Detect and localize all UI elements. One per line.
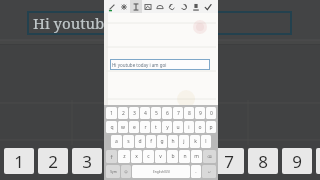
button[interactable]: 2 bbox=[38, 148, 68, 174]
button[interactable]: h bbox=[168, 135, 178, 148]
staticText: c bbox=[147, 153, 150, 160]
staticText: 1 bbox=[110, 110, 113, 117]
button[interactable]: 3 bbox=[129, 107, 139, 119]
button[interactable]: 8 bbox=[184, 107, 194, 119]
staticText: o bbox=[198, 124, 202, 131]
button[interactable]: 5 bbox=[151, 107, 161, 119]
button[interactable]: t bbox=[151, 121, 161, 133]
staticText: q bbox=[110, 124, 114, 131]
staticText: e bbox=[133, 124, 136, 131]
button[interactable]: Hi youtube t bbox=[27, 11, 292, 35]
button[interactable]: r bbox=[140, 121, 150, 133]
button[interactable]: s bbox=[123, 135, 134, 148]
staticText: Sym bbox=[110, 170, 117, 174]
staticText: 7 bbox=[177, 110, 180, 117]
staticText: 3 bbox=[82, 150, 92, 173]
button[interactable]: Shape bbox=[154, 0, 166, 13]
button[interactable]: ↑ bbox=[106, 150, 117, 163]
button[interactable]: English(US) bbox=[132, 165, 190, 178]
button[interactable]: a bbox=[111, 135, 122, 148]
button[interactable]: w bbox=[118, 121, 128, 133]
button[interactable]: o bbox=[195, 121, 205, 133]
button[interactable]: x bbox=[131, 150, 142, 163]
button[interactable]: y bbox=[162, 121, 172, 133]
button[interactable]: v bbox=[155, 150, 166, 163]
button[interactable]: 9 bbox=[195, 107, 205, 119]
button[interactable]: 1 bbox=[4, 148, 34, 174]
staticText: l bbox=[205, 138, 207, 145]
button[interactable]: . bbox=[191, 165, 201, 178]
staticText: 5 bbox=[155, 110, 158, 117]
button[interactable]: ↵ bbox=[202, 165, 216, 178]
button[interactable]: n bbox=[179, 150, 190, 163]
staticText: ☺ bbox=[124, 170, 128, 174]
button[interactable]: z bbox=[118, 150, 130, 163]
button[interactable]: q bbox=[106, 121, 117, 133]
button[interactable]: Image bbox=[142, 0, 154, 13]
staticText: 3 bbox=[133, 110, 136, 117]
button[interactable]: p bbox=[206, 121, 216, 133]
button[interactable]: 4 bbox=[140, 107, 150, 119]
button[interactable]: i bbox=[184, 121, 194, 133]
button[interactable]: Undo bbox=[166, 0, 178, 13]
button[interactable]: d bbox=[135, 135, 145, 148]
staticText: Hi youtube t bbox=[33, 13, 122, 33]
staticText: x bbox=[135, 153, 138, 160]
button[interactable]: Hi youtube today i am goi bbox=[110, 59, 210, 70]
button[interactable]: 6 bbox=[162, 107, 172, 119]
staticText: i bbox=[188, 124, 190, 131]
staticText: b bbox=[171, 153, 175, 160]
staticText: w bbox=[121, 124, 125, 131]
button[interactable]: Highlighter bbox=[118, 0, 130, 13]
button[interactable]: 7 bbox=[173, 107, 183, 119]
staticText: p bbox=[209, 124, 213, 131]
button[interactable]: l bbox=[201, 135, 211, 148]
staticText: y bbox=[166, 124, 169, 131]
staticText: 4 bbox=[116, 150, 126, 173]
button[interactable]: ⌫ bbox=[203, 150, 216, 163]
button[interactable]: 3 bbox=[72, 148, 102, 174]
staticText: ↵ bbox=[208, 170, 211, 174]
staticText: 9 bbox=[199, 110, 202, 117]
button[interactable]: Pen bbox=[106, 0, 118, 13]
button[interactable]: 9 bbox=[282, 148, 312, 174]
button[interactable]: g bbox=[157, 135, 167, 148]
button[interactable]: Redo bbox=[178, 0, 190, 13]
button[interactable]: e bbox=[129, 121, 139, 133]
staticText: t bbox=[155, 124, 157, 131]
button[interactable]: Sym bbox=[106, 165, 120, 178]
staticText: j bbox=[183, 138, 185, 145]
button[interactable]: 8 bbox=[248, 148, 278, 174]
button[interactable]: 4 bbox=[106, 148, 136, 174]
staticText: r bbox=[144, 124, 147, 131]
staticText: n bbox=[183, 153, 187, 160]
button[interactable]: f bbox=[146, 135, 156, 148]
button[interactable]: 7 bbox=[214, 148, 244, 174]
staticText: 2 bbox=[122, 110, 125, 117]
staticText: 2 bbox=[48, 150, 58, 173]
staticText: s bbox=[127, 138, 130, 145]
staticText: f bbox=[150, 138, 152, 145]
staticText: a bbox=[115, 138, 118, 145]
button[interactable]: m bbox=[191, 150, 202, 163]
button[interactable]: Text bbox=[130, 0, 142, 13]
button[interactable]: j bbox=[179, 135, 189, 148]
button[interactable]: k bbox=[190, 135, 200, 148]
button[interactable]: 0 bbox=[316, 148, 320, 174]
staticText: 1 bbox=[14, 150, 24, 173]
staticText: 7 bbox=[224, 150, 234, 173]
button[interactable]: b bbox=[167, 150, 178, 163]
staticText: g bbox=[160, 138, 164, 145]
button[interactable]: c bbox=[143, 150, 154, 163]
button[interactable]: Eraser bbox=[190, 0, 202, 13]
staticText: ↑ bbox=[109, 154, 114, 160]
staticText: 9 bbox=[292, 150, 302, 173]
button[interactable]: 2 bbox=[118, 107, 128, 119]
button[interactable]: 1 bbox=[106, 107, 117, 119]
button[interactable]: 0 bbox=[206, 107, 216, 119]
button[interactable]: Done bbox=[202, 0, 214, 13]
staticText: d bbox=[138, 138, 142, 145]
button[interactable]: u bbox=[173, 121, 183, 133]
button[interactable]: ☺ bbox=[121, 165, 131, 178]
staticText: English(US) bbox=[153, 170, 170, 174]
